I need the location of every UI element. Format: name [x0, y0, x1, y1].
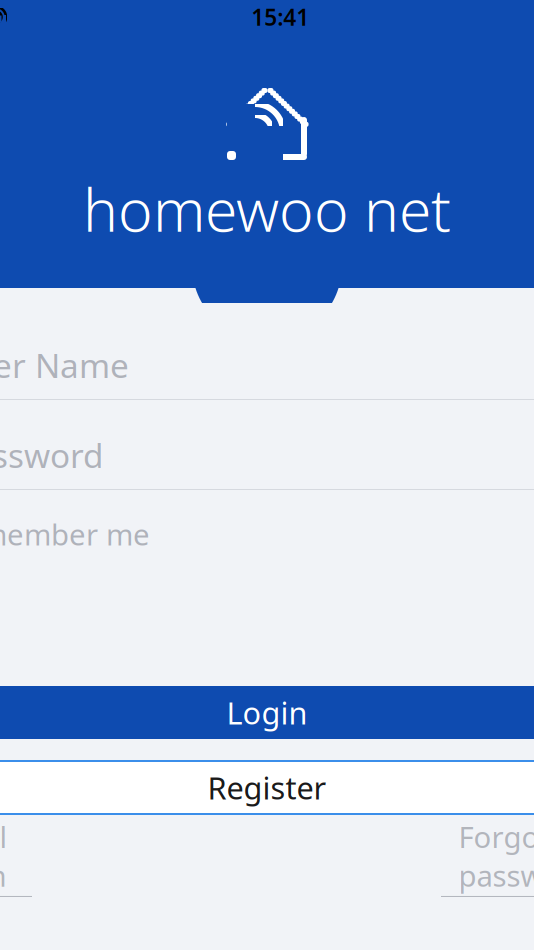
staticText: User Name: [0, 343, 129, 387]
staticText: Local login: [0, 817, 7, 895]
staticText: Register: [207, 767, 326, 808]
button[interactable]: Local login: [0, 817, 32, 897]
staticText: homewoo net: [83, 170, 451, 248]
staticText: Password: [0, 433, 104, 477]
staticText: Forgot password?: [458, 817, 534, 895]
staticText: Login: [226, 692, 307, 733]
button[interactable]: Login: [0, 686, 534, 739]
staticText: Remember me: [0, 514, 150, 553]
button[interactable]: Forgot password?: [441, 817, 534, 897]
button[interactable]: Register: [0, 761, 534, 814]
button[interactable]: Remember me: [0, 516, 534, 552]
staticText: 15:41: [251, 2, 309, 32]
